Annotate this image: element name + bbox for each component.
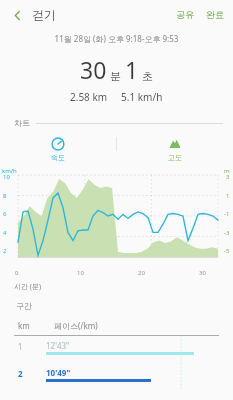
staticText: 10'49"	[46, 367, 71, 378]
staticText: 시간 (분)	[14, 282, 42, 292]
other: Altitude	[168, 137, 182, 151]
staticText: 10	[3, 173, 10, 181]
staticText: 초	[142, 69, 153, 83]
staticText: 1	[18, 341, 23, 352]
button[interactable]: 1	[0, 336, 233, 363]
button[interactable]: Back	[6, 4, 28, 26]
staticText: 30	[199, 269, 223, 277]
staticText: 20	[138, 269, 199, 277]
staticText: 0	[15, 269, 77, 277]
staticText: 고도	[168, 153, 182, 162]
staticText: 10	[77, 269, 138, 277]
staticText: 5.1 km/h	[121, 90, 163, 104]
staticText: 1	[226, 192, 230, 200]
staticText: 8	[3, 192, 7, 200]
staticText: 2.58 km	[70, 90, 108, 104]
staticText: 차트	[14, 118, 30, 128]
staticText: -1	[224, 210, 230, 218]
staticText: 공유	[176, 9, 194, 20]
button[interactable]: 2	[0, 363, 233, 390]
staticText: 걷기	[32, 7, 56, 22]
button[interactable]: 공유	[170, 3, 200, 26]
staticText: 6	[3, 210, 7, 218]
staticText: 완료	[206, 9, 224, 20]
staticText: 1	[125, 54, 139, 85]
staticText: 30	[80, 54, 107, 85]
staticText: 구간	[16, 301, 32, 311]
staticText: 3	[226, 173, 230, 181]
staticText: km	[18, 320, 30, 331]
staticText: -5	[224, 247, 230, 255]
staticText: 2	[18, 368, 23, 379]
staticText: m	[224, 167, 230, 175]
staticText: 4	[3, 229, 7, 237]
staticText: 속도	[51, 153, 65, 162]
other: Speed	[51, 137, 65, 151]
staticText: 2	[3, 247, 7, 255]
staticText: 12'43"	[46, 340, 70, 351]
staticText: -3	[224, 229, 230, 237]
button[interactable]: 완료	[200, 3, 233, 26]
staticText: 분	[110, 69, 121, 83]
staticText: 11월 28일 (화) 오후 9:18-오후 9:53	[0, 33, 233, 44]
staticText: 페이스(/km)	[54, 320, 98, 331]
staticText: km/h	[2, 167, 17, 175]
